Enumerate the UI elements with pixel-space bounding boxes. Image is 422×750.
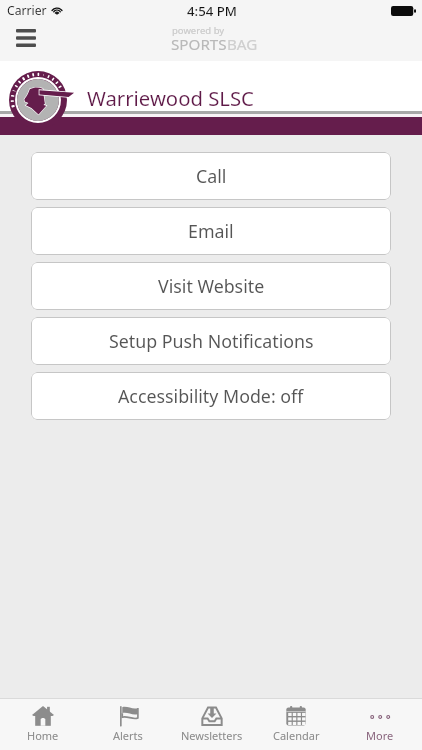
staticText: SPORTS (171, 34, 227, 55)
staticText: 4:54 PM (187, 2, 237, 20)
staticText: Calendar (273, 728, 320, 743)
staticText: powered by (172, 24, 225, 37)
staticText: Carrier (7, 2, 47, 19)
button[interactable]: Email (31, 207, 391, 255)
staticText: Alerts (113, 728, 143, 743)
staticText: Warriewood SLSC (87, 84, 254, 112)
staticText: Call (196, 164, 227, 188)
button[interactable]: Call (31, 152, 391, 200)
button[interactable]: Newsletters (170, 699, 254, 750)
button[interactable]: Calendar (254, 699, 338, 750)
staticText: Home (27, 728, 59, 743)
button[interactable]: Setup Push Notifications (31, 317, 391, 365)
button[interactable]: Visit Website (31, 262, 391, 310)
staticText: More (366, 728, 394, 743)
button[interactable]: Alerts (85, 699, 170, 750)
button[interactable]: Accessibility Mode: off (31, 372, 391, 420)
button[interactable]: More (338, 699, 422, 750)
button[interactable]: Menu (10, 22, 42, 54)
staticText: Email (188, 219, 234, 243)
staticText: Setup Push Notifications (109, 329, 314, 353)
button[interactable]: Home (0, 699, 85, 750)
staticText: Accessibility Mode: off (118, 384, 304, 408)
staticText: BAG (227, 34, 258, 55)
staticText: Newsletters (181, 728, 243, 743)
staticText: Visit Website (158, 274, 265, 298)
